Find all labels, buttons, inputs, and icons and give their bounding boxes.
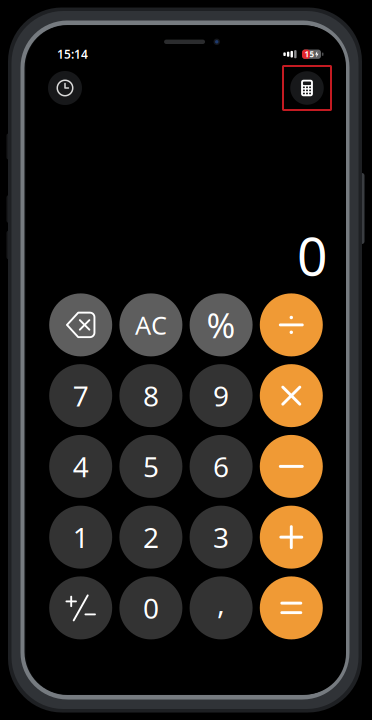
staticText: 3 [213,519,229,556]
button[interactable]: Minus [260,435,323,498]
button[interactable]: 3 [190,506,253,569]
button[interactable]: Plus [260,506,323,569]
staticText: 9 [213,377,229,414]
staticText: 15 [304,49,314,59]
button[interactable]: 0 [119,576,182,639]
button[interactable]: 9 [190,364,253,427]
staticText: % [207,302,236,348]
staticText: 5 [143,448,159,485]
staticText: , [217,583,225,622]
button[interactable]: AC [119,293,182,356]
button[interactable]: 8 [119,364,182,427]
button[interactable]: , [190,576,253,639]
button[interactable]: Calculator [283,66,331,110]
staticText: 0 [143,589,159,626]
button[interactable]: 1 [49,506,112,569]
staticText: 8 [143,377,159,414]
button[interactable]: Delete [49,293,112,356]
button[interactable]: 6 [190,435,253,498]
button[interactable]: Plus minus [49,576,112,639]
button[interactable]: Divide [260,293,323,356]
staticText: 6 [213,448,229,485]
button[interactable]: History [48,71,82,105]
staticText: AC [135,308,167,342]
staticText: 1 [73,519,89,556]
staticText: 0 [297,220,328,290]
button[interactable]: Multiply [260,364,323,427]
staticText: 15:14 [57,46,88,62]
staticText: 4 [73,448,89,485]
button[interactable]: 4 [49,435,112,498]
button[interactable]: 5 [119,435,182,498]
staticText: 2 [143,519,159,556]
staticText: 7 [73,377,89,414]
button[interactable]: Equals [260,576,323,639]
button[interactable]: 2 [119,506,182,569]
button[interactable]: 7 [49,364,112,427]
button[interactable]: % [190,293,253,356]
